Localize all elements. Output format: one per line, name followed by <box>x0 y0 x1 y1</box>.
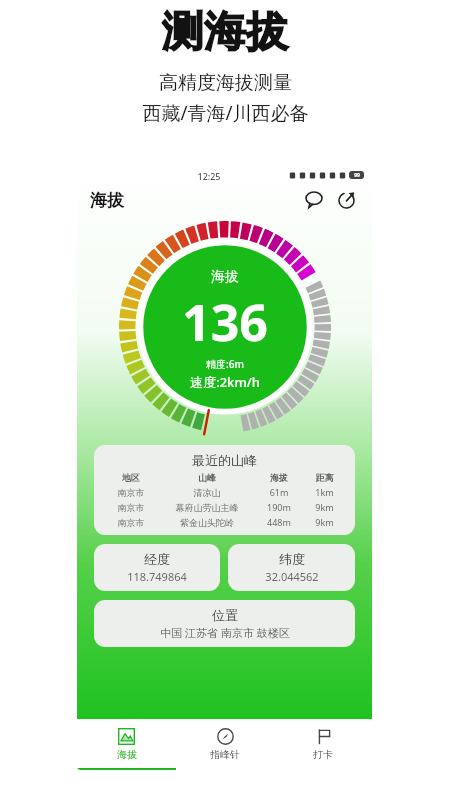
button[interactable]: 纬度 <box>228 544 355 591</box>
staticText: 9km <box>303 501 346 513</box>
staticText: 地区 <box>103 472 159 483</box>
staticText: 南京市 <box>103 487 159 498</box>
staticText: 经度 <box>144 551 170 567</box>
staticText: 西藏/青海/川西必备 <box>142 100 309 126</box>
staticText: 海拔 <box>117 748 137 761</box>
staticText: 指峰针 <box>210 748 240 761</box>
staticText: 清凉山 <box>159 487 255 498</box>
staticText: 190m <box>255 501 303 513</box>
staticText: 海拔 <box>211 268 239 286</box>
staticText: 海拔 <box>90 190 124 211</box>
button[interactable]: Feedback <box>301 187 327 213</box>
staticText: 32.044562 <box>265 569 319 584</box>
staticText: 99 <box>354 172 360 179</box>
staticText: 中国 江苏省 南京市 鼓楼区 <box>160 625 290 640</box>
staticText: 幕府山劳山主峰 <box>159 502 255 513</box>
staticText: 打卡 <box>313 748 333 761</box>
staticText: 高精度海拔测量 <box>159 71 292 95</box>
staticText: 118.749864 <box>127 569 187 584</box>
button[interactable]: Share <box>333 187 359 213</box>
staticText: 速度:2km/h <box>190 373 260 391</box>
staticText: 山峰 <box>159 472 255 483</box>
staticText: 61m <box>255 486 303 498</box>
staticText: 位置 <box>212 607 238 623</box>
button[interactable]: 打卡 <box>274 719 372 770</box>
staticText: 南京市 <box>103 517 159 528</box>
staticText: 12:25 <box>197 170 221 182</box>
staticText: 9km <box>303 516 346 528</box>
staticText: 纬度 <box>279 551 305 567</box>
button[interactable]: 位置 <box>94 600 355 647</box>
staticText: 距离 <box>303 472 346 483</box>
staticText: 448m <box>255 516 303 528</box>
button[interactable]: 最近的山峰 <box>94 445 355 535</box>
staticText: 南京市 <box>103 502 159 513</box>
button[interactable]: 指峰针 <box>176 719 274 770</box>
staticText: 136 <box>182 288 268 356</box>
button[interactable]: 海拔 <box>77 719 176 770</box>
staticText: 紫金山头陀岭 <box>159 517 255 528</box>
button[interactable]: 经度 <box>94 544 220 591</box>
staticText: 精度:6m <box>206 357 244 371</box>
staticText: 最近的山峰 <box>103 452 346 468</box>
staticText: 海拔 <box>255 472 303 483</box>
staticText: 测海拔 <box>162 6 288 59</box>
staticText: 1km <box>303 486 346 498</box>
